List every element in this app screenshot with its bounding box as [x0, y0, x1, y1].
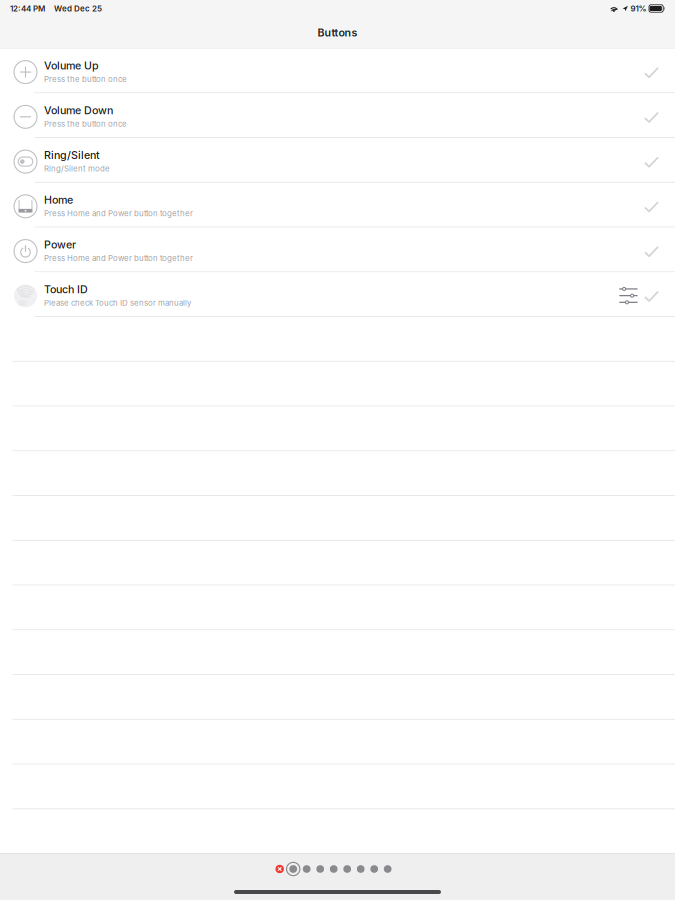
button[interactable]: Volume Up — [0, 49, 675, 93]
staticText: Ring/Silent mode — [44, 164, 110, 173]
staticText: 12:44 PM — [10, 4, 45, 13]
button[interactable]: Touch ID — [0, 272, 675, 317]
staticText: Power — [44, 238, 76, 251]
staticText: Volume Down — [44, 104, 113, 117]
staticText: Press the button once — [44, 119, 127, 128]
staticText: Press the button once — [44, 74, 127, 84]
button[interactable]: Power — [0, 228, 675, 272]
button[interactable]: Volume Down — [0, 93, 675, 138]
staticText: Ring/Silent — [44, 149, 100, 162]
button[interactable]: Home — [0, 183, 675, 228]
staticText: Press Home and Power button together — [44, 208, 193, 218]
staticText: Touch ID — [44, 283, 88, 296]
staticText: Wed Dec 25 — [54, 4, 102, 13]
button[interactable]: Ring/Silent — [0, 138, 675, 183]
staticText: 91% — [631, 4, 647, 13]
staticText: Please check Touch ID sensor manually — [44, 298, 191, 307]
staticText: Home — [44, 193, 73, 206]
staticText: Volume Up — [44, 59, 99, 72]
staticText: Press Home and Power button together — [44, 253, 193, 263]
staticText: Buttons — [317, 26, 357, 39]
